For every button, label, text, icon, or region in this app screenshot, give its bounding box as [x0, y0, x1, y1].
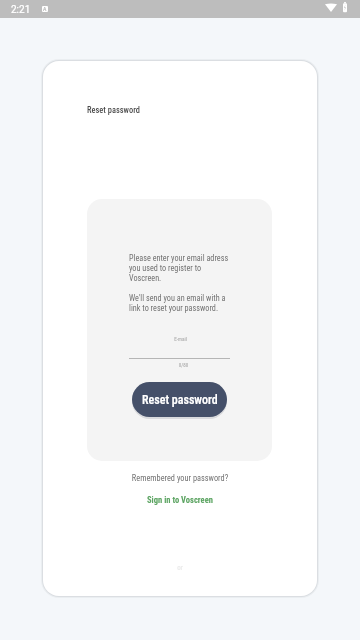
- staticText: Reset password: [87, 105, 140, 115]
- staticText: Sign in to Voscreen: [147, 495, 213, 505]
- staticText: 0/80: [133, 362, 234, 368]
- staticText: Remembered your password?: [43, 473, 317, 483]
- staticText: A: [43, 6, 47, 12]
- staticText: E-mail: [130, 336, 231, 342]
- staticText: Reset password: [142, 393, 218, 407]
- button[interactable]: Reset password: [132, 382, 227, 417]
- other: Wi-Fi: [325, 0, 337, 14]
- other: Battery: [343, 1, 347, 13]
- button[interactable]: E-mail: [129, 325, 230, 368]
- staticText: Please enter your email adress you used …: [129, 253, 230, 313]
- staticText: 2:21: [11, 4, 31, 16]
- button[interactable]: Sign in to Voscreen: [147, 495, 213, 505]
